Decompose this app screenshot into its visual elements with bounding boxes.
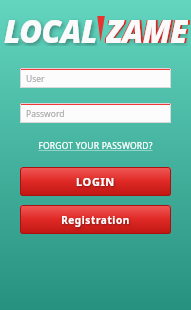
staticText: ZAME xyxy=(108,10,190,46)
staticText: User xyxy=(26,73,45,85)
staticText: ZAME xyxy=(106,10,188,46)
staticText: LOGIN xyxy=(76,174,115,189)
staticText: FORGOT YOUR PASSWORD? xyxy=(38,140,153,152)
staticText: Password xyxy=(26,108,65,120)
button[interactable]: Password xyxy=(20,103,171,123)
button[interactable]: LOGIN xyxy=(20,167,171,196)
staticText: ZAME xyxy=(105,10,187,46)
staticText: LOCAL xyxy=(4,10,97,46)
button[interactable]: Registration xyxy=(20,205,171,234)
button[interactable]: User xyxy=(20,68,171,88)
button[interactable]: FORGOT YOUR PASSWORD? xyxy=(20,140,171,152)
staticText: Registration xyxy=(61,213,130,227)
